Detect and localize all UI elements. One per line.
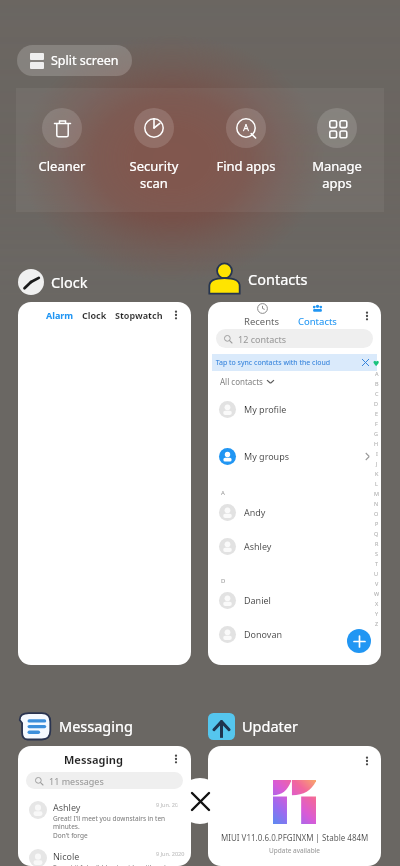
staticText: Stopwatch	[115, 309, 163, 321]
staticText: N	[374, 500, 379, 507]
button[interactable]: Donovan	[219, 621, 371, 647]
staticText: D	[221, 577, 226, 585]
staticText: O	[374, 510, 379, 517]
button[interactable]: Updater	[208, 710, 298, 742]
staticText: Recents	[244, 315, 280, 328]
staticText: Tap to sync contacts with the cloud	[212, 358, 331, 368]
staticText: A	[221, 489, 225, 497]
button[interactable]: Find apps	[206, 108, 286, 175]
button[interactable]: Messaging	[18, 746, 191, 866]
staticText: H	[374, 440, 379, 447]
staticText: My groups	[244, 450, 290, 462]
staticText: M	[374, 490, 379, 497]
button[interactable]: Alarm	[18, 302, 191, 665]
staticText: Updater	[242, 716, 298, 736]
staticText: Andy	[244, 506, 266, 518]
button[interactable]: Contacts	[294, 303, 340, 328]
staticText: Cleaner	[22, 157, 102, 175]
staticText: E	[375, 410, 379, 417]
button[interactable]: My groups	[219, 443, 371, 469]
button[interactable]: Split screen	[17, 45, 132, 76]
staticText: C	[375, 390, 379, 397]
staticText: Update available	[269, 846, 321, 855]
staticText: Great! I'll meet you downstairs in ten m…	[53, 814, 185, 831]
staticText: Contacts	[248, 269, 308, 289]
button[interactable]: Contacts	[208, 263, 308, 295]
staticText: Find apps	[206, 157, 286, 175]
button[interactable]: 11 messages	[26, 772, 183, 789]
staticText: Clock	[82, 309, 107, 321]
staticText: 12 contacts	[238, 333, 287, 345]
staticText: Donovan	[244, 628, 283, 640]
button[interactable]: Messaging	[18, 710, 133, 742]
staticText: S	[375, 550, 379, 557]
staticText: Z	[375, 620, 379, 627]
staticText: 9 Jun. 2020	[156, 850, 185, 857]
staticText: Contacts	[298, 315, 337, 328]
staticText: ♥	[373, 360, 380, 368]
staticText: J	[376, 460, 378, 467]
staticText: F	[375, 420, 378, 427]
staticText: 9 Jun. 2020	[156, 801, 185, 808]
staticText: V	[375, 580, 379, 587]
staticText: Ashley	[244, 540, 272, 552]
button[interactable]: Daniel	[219, 587, 371, 613]
staticText: Clock	[51, 272, 88, 292]
button[interactable]: Security scan	[114, 108, 194, 192]
button[interactable]: Ashley	[219, 533, 371, 559]
button[interactable]: Recents	[240, 303, 284, 328]
staticText: 11 messages	[49, 775, 104, 787]
staticText: Alarm	[46, 309, 74, 321]
staticText: Ashley	[53, 801, 81, 813]
button[interactable]: Manage apps	[297, 108, 377, 192]
staticText: Forget it,I don't bl get paid. until nex…	[53, 863, 185, 866]
button[interactable]: My profile	[219, 396, 371, 422]
staticText: Messaging	[64, 752, 123, 767]
staticText: D	[374, 400, 379, 407]
staticText: P	[375, 520, 379, 527]
staticText: X	[375, 600, 379, 607]
staticText: Manage apps	[297, 157, 377, 192]
button[interactable]: Nicole	[29, 850, 185, 866]
button[interactable]: Ashley	[29, 801, 185, 840]
staticText: G	[374, 430, 379, 437]
staticText: My profile	[244, 403, 287, 415]
staticText: R	[375, 540, 379, 547]
staticText: MIUI V11.0.6.0.PFGINXM | Stable 484M	[221, 832, 369, 843]
staticText: Daniel	[244, 594, 271, 606]
staticText: Nicole	[53, 850, 80, 862]
staticText: Y	[375, 610, 379, 617]
staticText: L	[375, 480, 378, 487]
staticText: All contacts	[220, 376, 263, 387]
staticText: Don't forge	[53, 831, 88, 840]
staticText: Q	[374, 530, 379, 537]
staticText: W	[374, 590, 380, 597]
staticText: A	[375, 370, 379, 377]
staticText: T	[375, 560, 379, 567]
staticText: Messaging	[59, 716, 133, 736]
staticText: K	[375, 470, 379, 477]
button[interactable]: Cleaner	[22, 108, 102, 175]
staticText: U	[374, 570, 379, 577]
button[interactable]: Close all apps	[177, 778, 223, 824]
button[interactable]: Add contact	[347, 629, 371, 653]
button[interactable]: Clock	[18, 266, 88, 298]
staticText: Split screen	[51, 52, 119, 69]
staticText: I	[376, 450, 378, 457]
staticText: B	[375, 380, 379, 387]
button[interactable]: Recents	[208, 302, 381, 665]
button[interactable]: 12 contacts	[216, 329, 373, 348]
staticText: Security scan	[114, 157, 194, 192]
button[interactable]: Andy	[219, 499, 371, 525]
button[interactable]: MIUI V11.0.6.0.PFGINXM | Stable 484M	[208, 746, 381, 866]
button[interactable]: Tap to sync contacts with the cloud	[212, 354, 377, 371]
